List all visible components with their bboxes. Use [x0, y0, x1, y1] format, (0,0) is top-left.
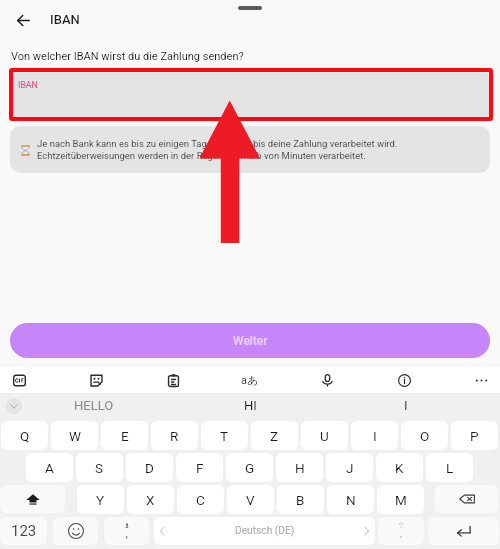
staticText: Von welcher IBAN wirst du die Zahlung se…: [11, 50, 244, 63]
staticText: Y: [96, 492, 105, 508]
button[interactable]: Period: [378, 517, 424, 545]
button[interactable]: W: [51, 421, 98, 450]
staticText: J: [346, 460, 354, 476]
button[interactable]: C: [177, 485, 224, 514]
staticText: HELLO: [74, 398, 114, 413]
staticText: IBAN: [50, 12, 80, 27]
staticText: P: [470, 428, 479, 444]
staticText: D: [145, 460, 154, 476]
staticText: I: [404, 398, 408, 413]
staticText: S: [95, 460, 104, 476]
button[interactable]: HI: [172, 393, 328, 418]
staticText: Q: [20, 428, 30, 444]
button[interactable]: Q: [1, 421, 48, 450]
button[interactable]: Shift: [0, 485, 65, 513]
staticText: X: [146, 492, 155, 508]
staticText: V: [246, 492, 255, 508]
button[interactable]: Switch language: [237, 367, 263, 393]
button[interactable]: M: [377, 485, 424, 514]
button[interactable]: Stickers: [83, 367, 109, 393]
button[interactable]: GIF: [6, 367, 32, 393]
button[interactable]: U: [301, 421, 348, 450]
button[interactable]: Backspace: [435, 485, 498, 513]
button[interactable]: HELLO: [16, 393, 172, 418]
button[interactable]: Emoji: [53, 517, 98, 545]
button[interactable]: J: [326, 453, 373, 482]
button[interactable]: Enter: [428, 517, 499, 545]
staticText: N: [346, 492, 356, 508]
button[interactable]: Voice input: [314, 367, 340, 393]
staticText: A: [45, 460, 54, 476]
button[interactable]: 123: [0, 517, 47, 545]
button[interactable]: R: [151, 421, 198, 450]
button[interactable]: S: [76, 453, 123, 482]
button[interactable]: Back: [2, 6, 44, 34]
staticText: W: [69, 428, 81, 444]
staticText: 123: [11, 522, 37, 540]
button[interactable]: B: [277, 485, 324, 514]
staticText: M: [395, 492, 407, 508]
staticText: Deutsch (DE): [235, 525, 295, 537]
button[interactable]: H: [276, 453, 323, 482]
button[interactable]: V: [227, 485, 274, 514]
button[interactable]: IBAN: [13, 73, 489, 117]
button[interactable]: N: [327, 485, 374, 514]
button[interactable]: Deutsch (DE): [154, 517, 375, 545]
staticText: B: [296, 492, 305, 508]
staticText: R: [170, 428, 179, 444]
button[interactable]: G: [226, 453, 273, 482]
button[interactable]: Voice input: [104, 517, 149, 545]
button[interactable]: I: [351, 421, 398, 450]
staticText: C: [196, 492, 205, 508]
staticText: Z: [270, 428, 279, 444]
staticText: aあ: [241, 373, 259, 387]
staticText: H: [295, 460, 305, 476]
button[interactable]: F: [176, 453, 223, 482]
button[interactable]: O: [401, 421, 448, 450]
button[interactable]: I: [328, 393, 484, 418]
button[interactable]: Y: [77, 485, 124, 514]
button[interactable]: Weiter: [10, 323, 490, 358]
staticText: T: [220, 428, 229, 444]
button[interactable]: D: [126, 453, 173, 482]
staticText: Weiter: [233, 334, 268, 348]
button[interactable]: Clipboard: [160, 367, 186, 393]
button[interactable]: Z: [251, 421, 298, 450]
staticText: O: [420, 428, 430, 444]
button[interactable]: Expand toolbar: [6, 398, 22, 414]
staticText: HI: [244, 398, 257, 413]
button[interactable]: E: [101, 421, 148, 450]
button[interactable]: More options: [468, 367, 494, 393]
button[interactable]: K: [376, 453, 423, 482]
staticText: U: [320, 428, 329, 444]
button[interactable]: A: [26, 453, 73, 482]
staticText: F: [196, 460, 204, 476]
button[interactable]: L: [426, 453, 473, 482]
staticText: I: [373, 428, 377, 444]
button[interactable]: P: [451, 421, 498, 450]
staticText: K: [395, 460, 404, 476]
staticText: Echtzeitüberweisungen werden in der Rege…: [37, 150, 366, 161]
button[interactable]: Info: [391, 367, 417, 393]
staticText: L: [446, 460, 454, 476]
staticText: IBAN: [18, 80, 38, 90]
staticText: E: [121, 428, 129, 444]
button[interactable]: X: [127, 485, 174, 514]
staticText: G: [245, 460, 255, 476]
staticText: Je nach Bank kann es bis zu einigen Tage…: [37, 138, 398, 149]
button[interactable]: T: [201, 421, 248, 450]
